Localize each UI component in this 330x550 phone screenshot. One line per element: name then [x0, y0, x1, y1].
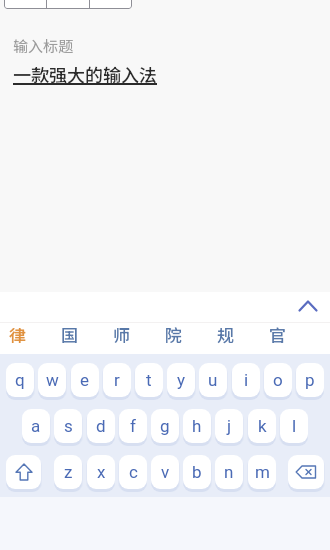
button[interactable]: 规 [208, 321, 242, 347]
button[interactable]: r [103, 363, 131, 397]
staticText: q [15, 370, 25, 390]
staticText: d [96, 416, 106, 436]
button[interactable]: t [135, 363, 163, 397]
button[interactable]: n [215, 455, 243, 489]
staticText: 官 [269, 322, 286, 347]
button[interactable]: y [167, 363, 195, 397]
button[interactable] [0, 28, 330, 58]
button[interactable] [288, 455, 324, 489]
staticText: a [31, 416, 41, 436]
staticText: 师 [113, 322, 130, 347]
staticText: w [46, 370, 59, 390]
button[interactable]: 院 [156, 321, 190, 347]
button[interactable]: k [248, 409, 276, 443]
staticText: s [64, 416, 73, 436]
staticText: 规 [217, 322, 234, 347]
staticText: z [64, 462, 73, 482]
button[interactable]: 国 [52, 321, 86, 347]
button[interactable]: x [87, 455, 115, 489]
staticText: f [130, 416, 136, 436]
staticText: y [177, 370, 186, 390]
button[interactable]: g [151, 409, 179, 443]
staticText: u [208, 370, 218, 390]
button[interactable]: 师 [104, 321, 138, 347]
staticText: b [192, 462, 202, 482]
staticText: c [129, 462, 138, 482]
button[interactable] [6, 455, 41, 489]
staticText: g [160, 416, 170, 436]
staticText: e [80, 370, 90, 390]
button[interactable]: v [151, 455, 179, 489]
staticText: l [292, 416, 297, 436]
button[interactable] [288, 293, 328, 319]
staticText: i [244, 370, 249, 390]
staticText: n [224, 462, 234, 482]
button[interactable]: e [71, 363, 99, 397]
staticText: 一款强大的输入法 [13, 61, 157, 87]
button[interactable]: u [199, 363, 227, 397]
staticText: 输入标题 [13, 35, 74, 57]
staticText: m [255, 462, 270, 482]
staticText: 院 [165, 322, 182, 347]
staticText: h [192, 416, 202, 436]
button[interactable]: q [6, 363, 34, 397]
staticText: x [97, 462, 106, 482]
button[interactable]: a [22, 409, 50, 443]
button[interactable]: i [232, 363, 260, 397]
button[interactable]: j [215, 409, 243, 443]
button[interactable]: h [183, 409, 211, 443]
button[interactable]: s [54, 409, 82, 443]
staticText: 国 [61, 322, 78, 347]
staticText: j [227, 416, 232, 436]
button[interactable]: c [119, 455, 147, 489]
staticText: o [273, 370, 283, 390]
button[interactable]: l [280, 409, 308, 443]
button[interactable]: w [38, 363, 66, 397]
button[interactable]: z [54, 455, 82, 489]
button[interactable]: m [248, 455, 276, 489]
button[interactable]: f [119, 409, 147, 443]
staticText: r [114, 370, 120, 390]
staticText: k [258, 416, 267, 436]
button[interactable]: 律 [0, 321, 34, 347]
button[interactable]: b [183, 455, 211, 489]
button[interactable] [0, 58, 330, 90]
button[interactable]: d [87, 409, 115, 443]
staticText: t [146, 370, 152, 390]
staticText: p [305, 370, 315, 390]
button[interactable]: o [264, 363, 292, 397]
button[interactable]: 官 [260, 321, 294, 347]
staticText: 律 [9, 322, 26, 347]
button[interactable]: p [296, 363, 324, 397]
staticText: v [161, 462, 170, 482]
